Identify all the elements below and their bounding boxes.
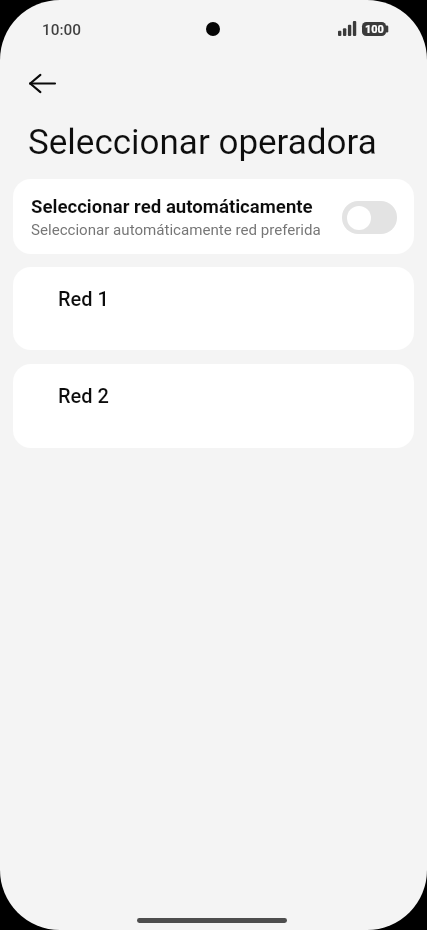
staticText: Seleccionar automáticamente red preferid…: [31, 221, 321, 239]
staticText: Seleccionar operadora: [28, 122, 377, 163]
staticText: Red 2: [58, 384, 109, 407]
button[interactable]: Back: [19, 60, 65, 106]
button[interactable]: Seleccionar red automáticamente: [13, 179, 414, 254]
button[interactable]: Seleccionar red automáticamente: [342, 201, 397, 234]
button[interactable]: Red 1: [13, 267, 414, 350]
staticText: Seleccionar red automáticamente: [31, 196, 313, 218]
staticText: Red 1: [58, 287, 109, 310]
button[interactable]: Red 2: [13, 364, 414, 448]
staticText: 100: [365, 23, 384, 36]
staticText: 10:00: [42, 21, 82, 39]
